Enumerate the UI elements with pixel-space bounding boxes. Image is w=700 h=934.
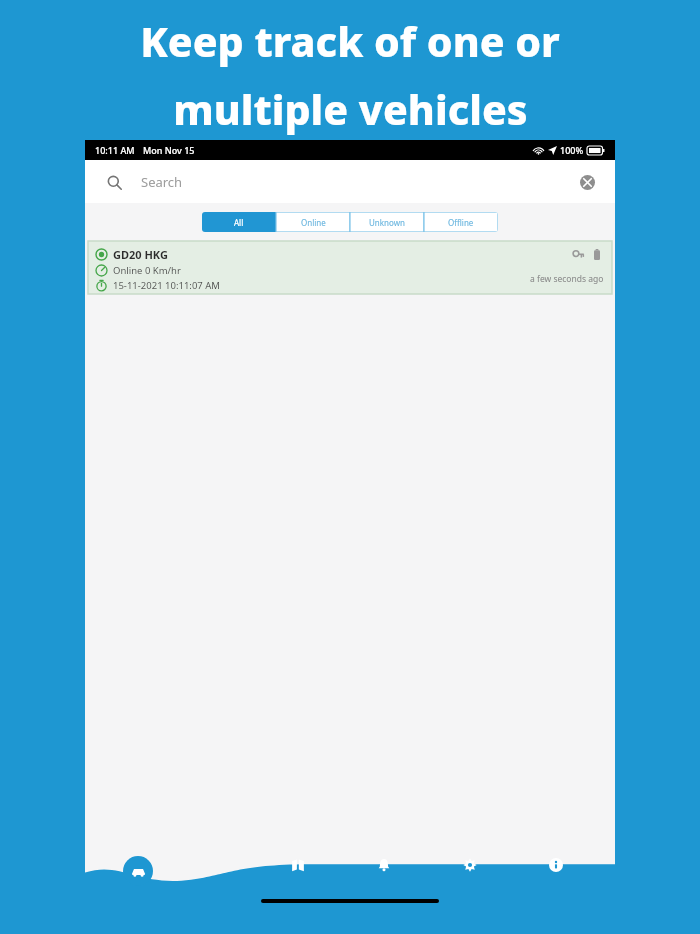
button[interactable]: Offline [424,212,498,232]
button[interactable]: Notifications [341,845,427,893]
button[interactable]: Online [276,212,350,232]
staticText: All [234,217,244,228]
button[interactable]: Vehicles [123,856,153,886]
staticText: GD20 HKG [113,247,168,262]
button[interactable]: Unknown [350,212,424,232]
staticText: Offline [448,217,474,228]
button[interactable]: All [202,212,276,232]
button[interactable]: Immobilizer [571,247,585,261]
button[interactable]: Search [101,169,127,195]
button[interactable]: Settings [427,845,513,893]
staticText: Online 0 Km/hr [113,264,181,277]
staticText: 15-11-2021 10:11:07 AM [113,279,220,292]
staticText: 100% [560,144,584,156]
button[interactable]: GD20 HKG [88,241,612,294]
button[interactable]: Info [513,845,599,893]
staticText: multiple vehicles [173,81,528,137]
staticText: Online [301,217,326,228]
button[interactable]: Battery [590,247,604,261]
staticText: Unknown [369,217,405,228]
staticText: a few seconds ago [530,273,604,285]
button[interactable]: Clear search [575,170,599,194]
button[interactable]: Map [255,845,341,893]
staticText: 10:11 AM [95,144,135,156]
staticText: Search [141,173,183,191]
staticText: Mon Nov 15 [143,144,195,156]
staticText: Keep track of one or [140,13,560,69]
